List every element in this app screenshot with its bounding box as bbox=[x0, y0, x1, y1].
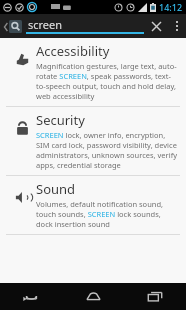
staticText: Volumes, default notification sound, tou… bbox=[36, 199, 178, 229]
staticText: 14:12 bbox=[159, 1, 183, 13]
staticText: Security bbox=[36, 111, 85, 129]
button[interactable]: Clear search bbox=[144, 14, 168, 38]
button[interactable]: Back bbox=[0, 283, 62, 310]
button[interactable]: Recent apps bbox=[124, 283, 186, 310]
button[interactable]: Home bbox=[62, 283, 124, 310]
button[interactable]: More options bbox=[168, 14, 186, 38]
button[interactable]: Accessibility bbox=[0, 38, 186, 106]
staticText: screen bbox=[28, 17, 63, 32]
staticText: Sound bbox=[36, 180, 76, 198]
button[interactable]: Back bbox=[0, 14, 26, 38]
staticText: Accessibility bbox=[36, 42, 110, 60]
button[interactable]: Security bbox=[0, 107, 186, 175]
staticText: Magnification gestures, large text, auto… bbox=[36, 61, 178, 101]
button[interactable]: Sound bbox=[0, 176, 186, 234]
staticText: SCREEN lock, owner info, encryption, SIM… bbox=[36, 130, 178, 170]
